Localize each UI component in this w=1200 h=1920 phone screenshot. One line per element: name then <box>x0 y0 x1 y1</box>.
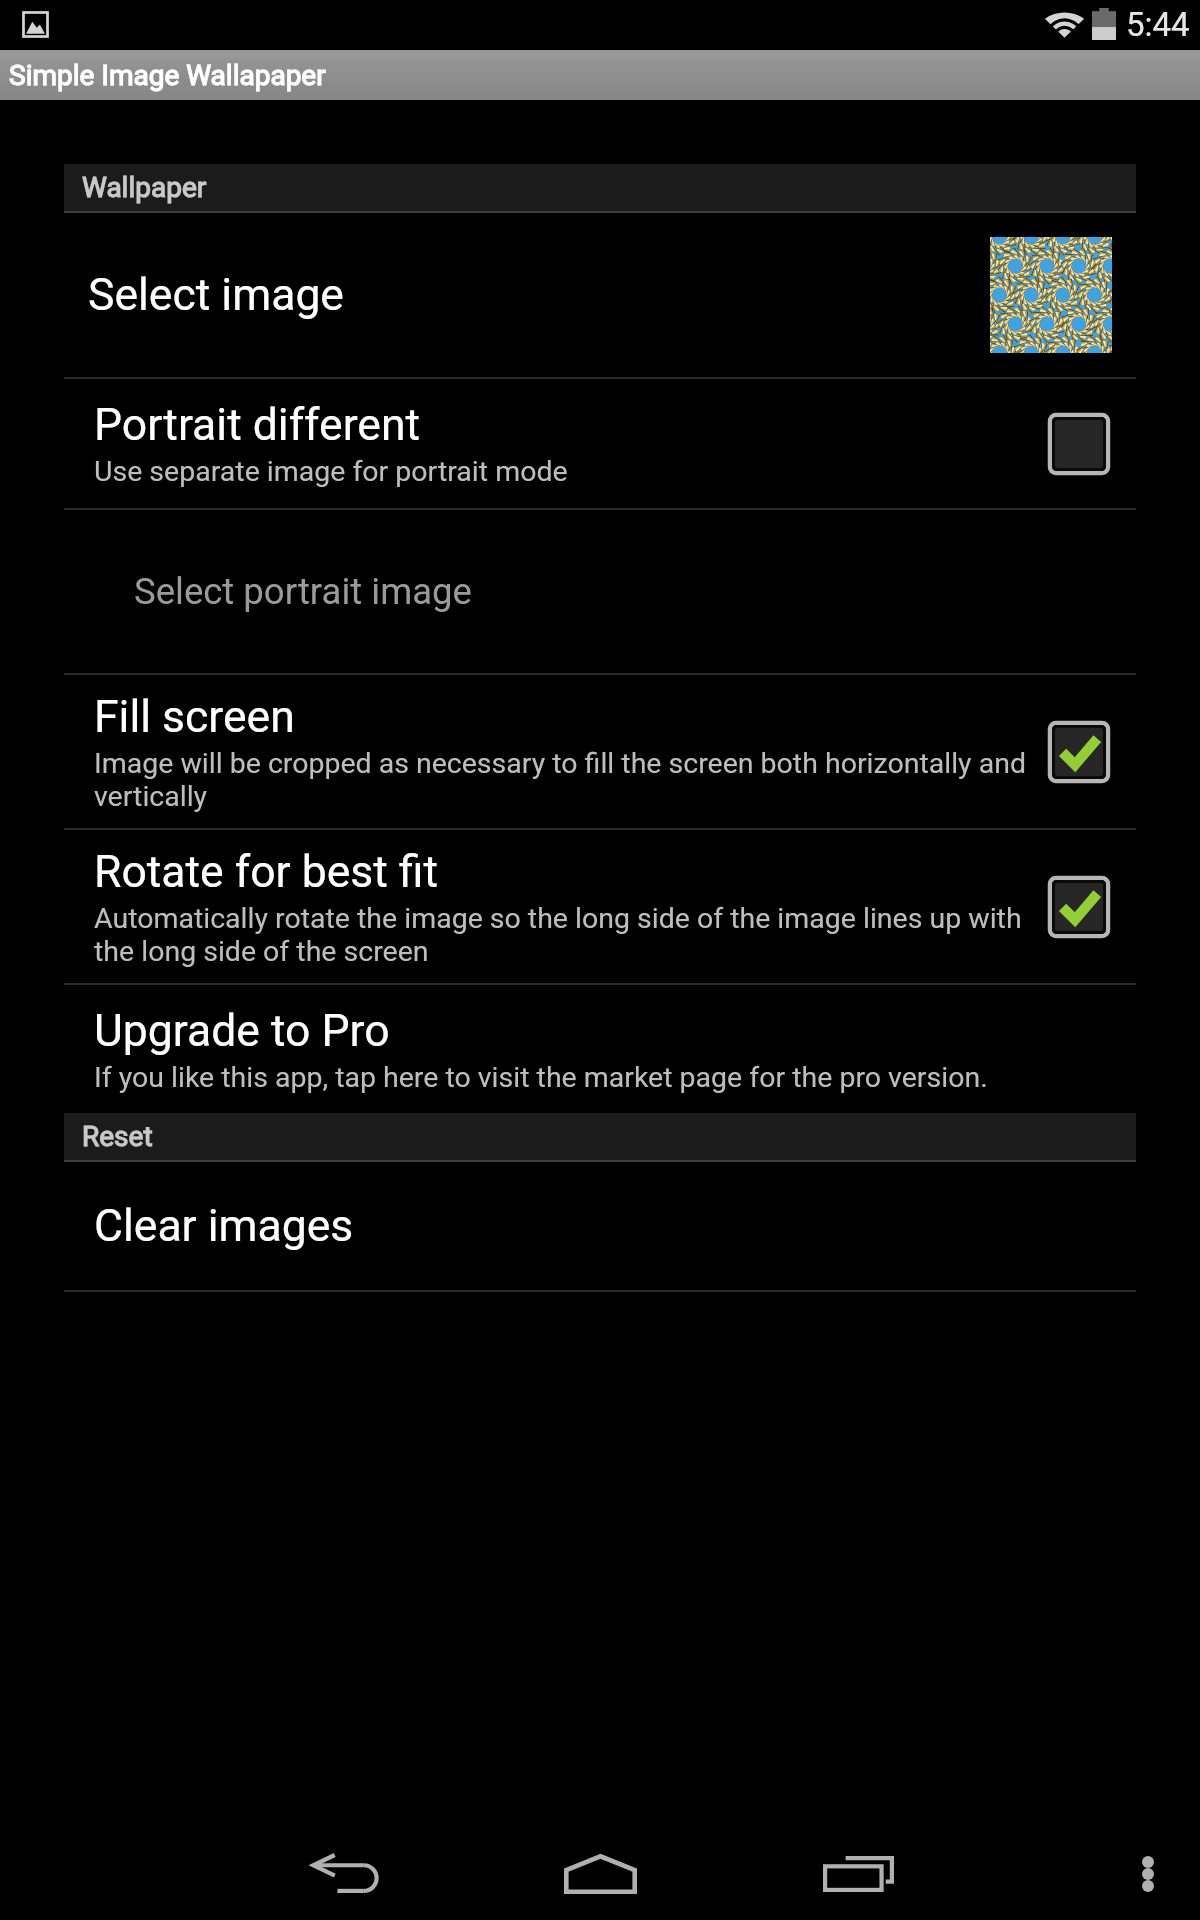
staticText: Select image <box>88 269 344 321</box>
staticText: If you like this app, tap here to visit … <box>94 1061 988 1094</box>
staticText: Fill screen <box>94 691 295 743</box>
staticText: Rotate for best fit <box>94 846 439 898</box>
staticText: Upgrade to Pro <box>94 1005 390 1057</box>
button[interactable]: Unchecked <box>1043 408 1115 480</box>
button[interactable]: Home <box>520 1833 680 1915</box>
staticText: Portrait different <box>94 399 421 451</box>
staticText: Image will be cropped as necessary to fi… <box>94 747 1030 813</box>
button[interactable]: Rotate for best fit <box>0 830 1200 983</box>
button[interactable]: Checked <box>1043 716 1115 788</box>
button[interactable]: Back <box>264 1833 424 1915</box>
button[interactable]: More options <box>1108 1833 1188 1915</box>
button[interactable]: Fill screen <box>0 675 1200 828</box>
staticText: Use separate image for portrait mode <box>94 455 568 488</box>
button[interactable]: Select portrait image <box>0 510 1200 673</box>
button[interactable]: Checked <box>1043 871 1115 943</box>
staticText: Reset <box>82 1120 153 1153</box>
staticText: Automatically rotate the image so the lo… <box>94 902 1030 968</box>
staticText: Clear images <box>94 1200 354 1252</box>
staticText: Wallpaper <box>82 171 207 204</box>
button[interactable]: Clear images <box>0 1162 1200 1290</box>
staticText: Select portrait image <box>134 570 472 613</box>
button[interactable]: Select image <box>0 213 1200 377</box>
button[interactable]: Portrait different <box>0 379 1200 508</box>
button[interactable]: Recent apps <box>778 1833 938 1915</box>
staticText: Simple Image Wallapaper <box>9 59 326 92</box>
staticText: 5:44 <box>1126 5 1190 44</box>
button[interactable]: Upgrade to Pro <box>0 985 1200 1113</box>
